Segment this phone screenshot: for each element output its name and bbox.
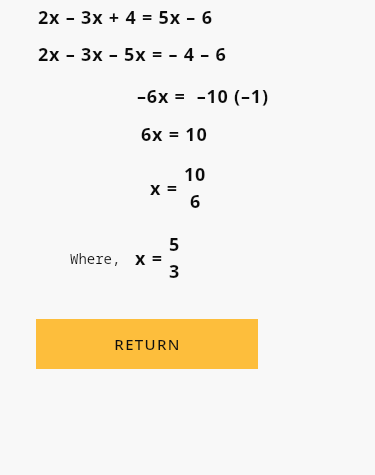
- staticText: Where,: [70, 249, 121, 268]
- button[interactable]: RETURN: [36, 319, 258, 369]
- staticText: 5: [169, 232, 181, 257]
- staticText: –6x = –10 (–1): [137, 84, 269, 109]
- staticText: 2x – 3x + 4 = 5x – 6: [38, 5, 213, 30]
- staticText: x =: [150, 176, 184, 201]
- staticText: 6x = 10: [141, 122, 208, 147]
- staticText: 3: [169, 259, 181, 284]
- staticText: 2x – 3x – 5x = – 4 – 6: [38, 42, 227, 67]
- staticText: 6: [190, 189, 202, 214]
- staticText: 10: [184, 162, 207, 187]
- staticText: RETURN: [114, 334, 181, 354]
- staticText: x =: [135, 246, 169, 271]
